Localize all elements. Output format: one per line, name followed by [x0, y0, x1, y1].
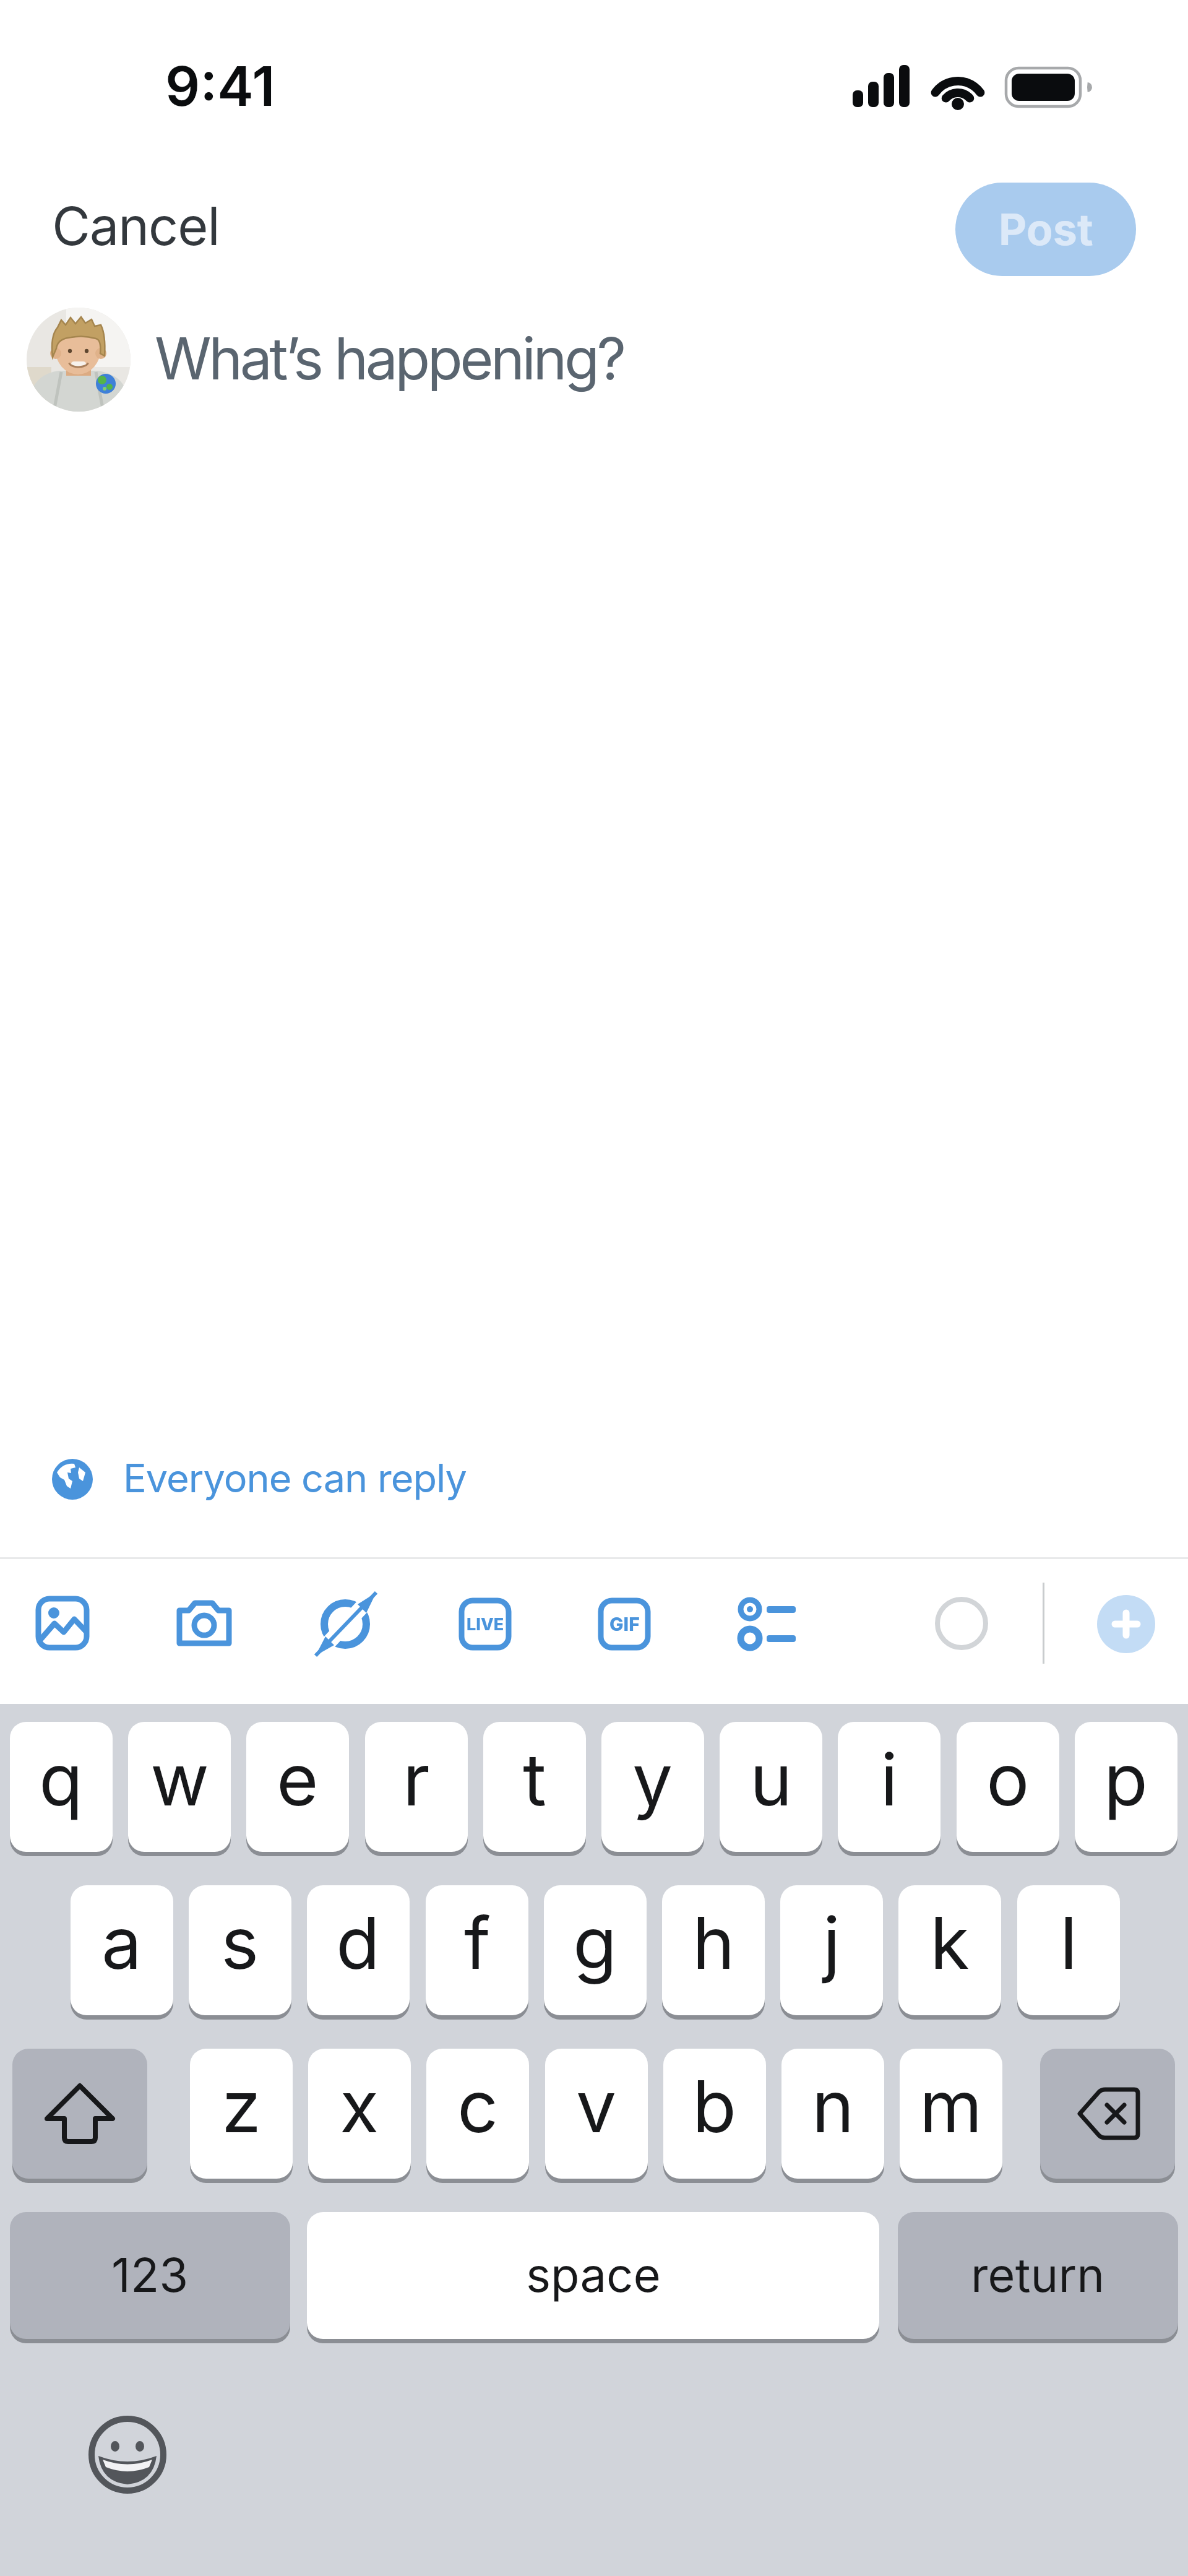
button[interactable]: r: [365, 1722, 468, 1856]
staticText: t: [523, 1736, 546, 1823]
staticText: k: [930, 1900, 970, 1986]
button[interactable]: o: [957, 1722, 1059, 1856]
staticText: c: [457, 2063, 499, 2150]
button[interactable]: u: [720, 1722, 822, 1856]
button[interactable]: n: [781, 2049, 884, 2183]
staticText: LIVE: [467, 1614, 504, 1635]
staticText: Post: [999, 203, 1093, 256]
staticText: n: [812, 2063, 854, 2150]
button[interactable]: g: [544, 1885, 647, 2020]
staticText: i: [880, 1736, 898, 1823]
staticText: z: [222, 2063, 262, 2150]
button[interactable]: s: [189, 1885, 291, 2020]
staticText: d: [336, 1900, 381, 1986]
button[interactable]: b: [663, 2049, 766, 2183]
staticText: b: [692, 2063, 737, 2150]
button[interactable]: LIVE: [459, 1598, 511, 1650]
staticText: j: [823, 1900, 841, 1986]
staticText: return: [971, 2246, 1105, 2303]
button[interactable]: [43, 1448, 476, 1510]
button[interactable]: [36, 1596, 89, 1650]
staticText: y: [632, 1736, 673, 1823]
staticText: Everyone can reply: [123, 1454, 467, 1502]
staticText: e: [277, 1736, 319, 1823]
button[interactable]: h: [662, 1885, 765, 2020]
button[interactable]: Post: [955, 183, 1136, 276]
button[interactable]: space: [307, 2212, 879, 2343]
button[interactable]: p: [1075, 1722, 1177, 1856]
button[interactable]: q: [10, 1722, 113, 1856]
button[interactable]: e: [246, 1722, 349, 1856]
button[interactable]: c: [426, 2049, 529, 2183]
button[interactable]: a: [71, 1885, 173, 2020]
button[interactable]: w: [128, 1722, 231, 1856]
staticText: u: [750, 1736, 793, 1823]
staticText: f: [464, 1900, 491, 1986]
staticText: m: [919, 2063, 983, 2150]
staticText: space: [526, 2246, 661, 2303]
button[interactable]: [176, 1600, 232, 1646]
staticText: h: [692, 1900, 735, 1986]
button[interactable]: t: [483, 1722, 586, 1856]
staticText: x: [340, 2063, 379, 2150]
button[interactable]: GIF: [598, 1598, 650, 1650]
button[interactable]: return: [898, 2212, 1178, 2343]
staticText: o: [986, 1736, 1030, 1823]
staticText: a: [101, 1900, 142, 1986]
button[interactable]: [27, 308, 131, 412]
staticText: g: [573, 1900, 618, 1986]
button[interactable]: m: [900, 2049, 1002, 2183]
staticText: s: [221, 1900, 259, 1986]
staticText: l: [1060, 1900, 1078, 1986]
button[interactable]: 123: [10, 2212, 290, 2343]
button[interactable]: j: [780, 1885, 883, 2020]
button[interactable]: [1040, 2049, 1175, 2183]
button[interactable]: [1097, 1595, 1155, 1653]
button[interactable]: v: [545, 2049, 648, 2183]
staticText: 9:41: [165, 53, 275, 119]
button[interactable]: y: [601, 1722, 704, 1856]
staticText: What’s happening?: [155, 324, 624, 394]
button[interactable]: [313, 1591, 381, 1659]
button[interactable]: i: [838, 1722, 940, 1856]
button[interactable]: [736, 1596, 798, 1653]
staticText: 123: [111, 2246, 189, 2303]
staticText: Cancel: [52, 194, 220, 258]
button[interactable]: l: [1017, 1885, 1120, 2020]
button[interactable]: z: [190, 2049, 293, 2183]
staticText: p: [1104, 1736, 1148, 1823]
button[interactable]: [12, 2049, 147, 2183]
button[interactable]: x: [308, 2049, 411, 2183]
staticText: w: [150, 1736, 209, 1823]
staticText: r: [403, 1736, 430, 1823]
button[interactable]: k: [898, 1885, 1001, 2020]
button[interactable]: f: [426, 1885, 528, 2020]
button[interactable]: Cancel: [40, 186, 219, 260]
staticText: GIF: [609, 1613, 640, 1635]
staticText: v: [576, 2063, 617, 2150]
button[interactable]: d: [307, 1885, 410, 2020]
button[interactable]: [88, 2415, 167, 2494]
staticText: q: [39, 1736, 84, 1823]
